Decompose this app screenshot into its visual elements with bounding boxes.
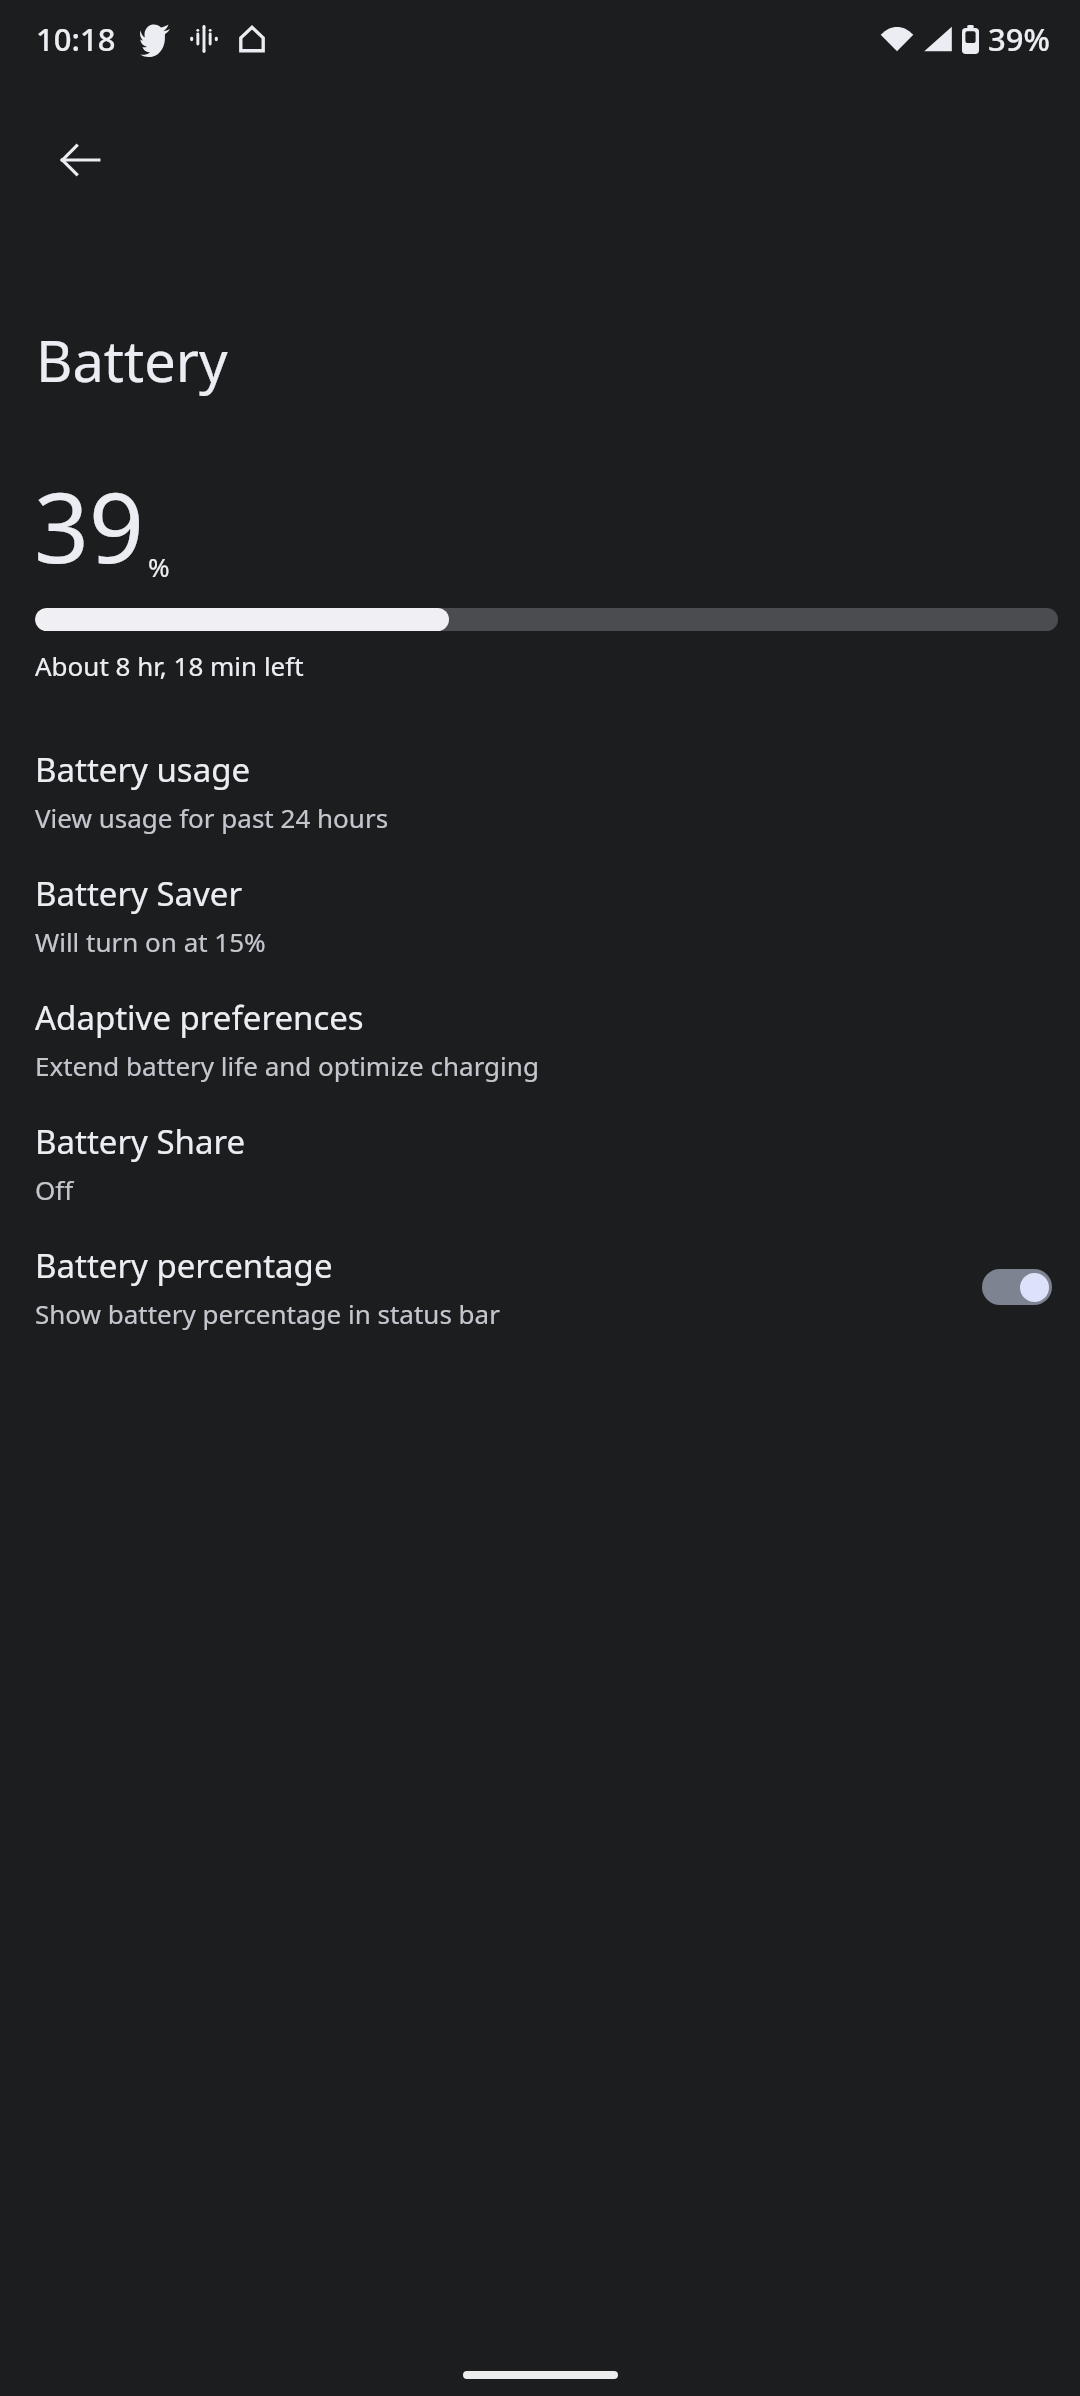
staticText: 39% [988, 18, 1050, 60]
button[interactable]: Back [26, 106, 134, 214]
button[interactable]: Battery percentage [0, 1225, 1080, 1349]
staticText: Battery Share [35, 1119, 246, 1164]
staticText: 39 [34, 460, 144, 591]
staticText: Battery percentage [35, 1243, 333, 1288]
button[interactable]: Battery Share [0, 1101, 1080, 1225]
button[interactable]: Battery usage [0, 729, 1080, 853]
staticText: Extend battery life and optimize chargin… [35, 1048, 539, 1083]
staticText: Battery Saver [35, 871, 243, 916]
staticText: Battery [36, 322, 228, 398]
staticText: About 8 hr, 18 min left [35, 648, 304, 683]
button[interactable]: Battery Saver [0, 853, 1080, 977]
button[interactable]: Adaptive preferences [0, 977, 1080, 1101]
staticText: Will turn on at 15% [35, 924, 266, 959]
staticText: Show battery percentage in status bar [35, 1296, 500, 1331]
button[interactable]: Battery percentage toggle [982, 1269, 1052, 1305]
staticText: 10:18 [36, 18, 116, 60]
staticText: Adaptive preferences [35, 995, 364, 1040]
staticText: Battery usage [35, 747, 251, 792]
staticText: View usage for past 24 hours [35, 800, 389, 835]
staticText: % [148, 549, 170, 584]
staticText: Off [35, 1172, 74, 1207]
